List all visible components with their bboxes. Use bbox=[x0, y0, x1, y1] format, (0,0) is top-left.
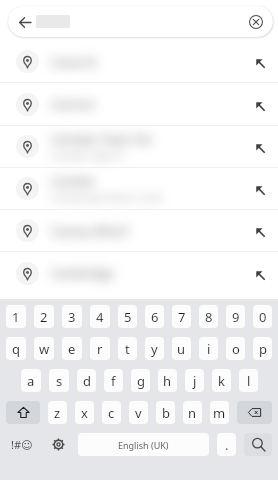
staticText: Cambridge bbox=[51, 265, 114, 281]
button[interactable]: Insert suggestion bbox=[243, 44, 278, 79]
button[interactable]: Cambridge bbox=[0, 252, 278, 294]
button[interactable]: Shift bbox=[6, 401, 40, 424]
staticText: 4 bbox=[96, 308, 104, 326]
button[interactable]: Cannon bbox=[0, 83, 278, 125]
button[interactable]: c bbox=[102, 401, 121, 424]
staticText: 6 bbox=[151, 308, 159, 326]
staticText: g bbox=[137, 372, 145, 390]
staticText: u bbox=[177, 340, 186, 358]
button[interactable]: g bbox=[131, 369, 150, 392]
staticText: Camber bbox=[51, 173, 96, 189]
button[interactable]: t bbox=[118, 337, 137, 360]
button[interactable]: 3 bbox=[62, 305, 82, 328]
button[interactable]: Backspace bbox=[237, 401, 272, 424]
staticText: x bbox=[81, 404, 88, 422]
button[interactable]: p bbox=[253, 337, 272, 360]
staticText: c bbox=[108, 404, 115, 422]
button[interactable]: o bbox=[226, 337, 245, 360]
staticText: . bbox=[225, 436, 229, 454]
button[interactable]: Symbols and emoji bbox=[2, 433, 42, 456]
staticText: Cannon bbox=[51, 96, 95, 112]
button[interactable]: d bbox=[77, 369, 96, 392]
button[interactable]: q bbox=[6, 337, 26, 360]
button[interactable]: Back bbox=[11, 8, 39, 36]
staticText: t bbox=[125, 340, 130, 358]
button[interactable]: Keyboard settings bbox=[42, 433, 74, 456]
button[interactable]: u bbox=[172, 337, 191, 360]
staticText: 9 bbox=[232, 308, 240, 326]
staticText: i bbox=[207, 340, 211, 358]
staticText: 2 bbox=[40, 308, 48, 326]
staticText: h bbox=[163, 372, 172, 390]
button[interactable]: e bbox=[62, 337, 82, 360]
button[interactable]: . bbox=[217, 433, 236, 456]
staticText: r bbox=[97, 340, 103, 358]
staticText: 1 bbox=[12, 308, 20, 326]
button[interactable]: s bbox=[49, 369, 69, 392]
button[interactable]: English (UK) bbox=[78, 433, 209, 456]
button[interactable]: 0 bbox=[253, 305, 272, 328]
staticText: k bbox=[218, 372, 225, 390]
button[interactable]: l bbox=[239, 369, 258, 392]
button[interactable]: i bbox=[199, 337, 218, 360]
button[interactable]: Insert suggestion bbox=[243, 256, 278, 291]
button[interactable]: Canal St bbox=[0, 41, 278, 82]
button[interactable]: Insert suggestion bbox=[243, 171, 278, 206]
button[interactable]: Clear search bbox=[243, 9, 269, 35]
staticText: j bbox=[193, 372, 197, 390]
button[interactable]: Canary Wharf bbox=[0, 210, 278, 251]
button[interactable]: y bbox=[145, 337, 164, 360]
staticText: f bbox=[111, 372, 116, 390]
staticText: o bbox=[232, 340, 240, 358]
staticText: !#☺ bbox=[11, 437, 33, 452]
staticText: a bbox=[27, 372, 35, 390]
staticText: p bbox=[259, 340, 267, 358]
button[interactable]: 2 bbox=[34, 305, 54, 328]
staticText: English (UK) bbox=[118, 439, 169, 451]
button[interactable]: x bbox=[75, 401, 94, 424]
button[interactable]: 7 bbox=[172, 305, 191, 328]
staticText: b bbox=[162, 404, 170, 422]
button[interactable]: b bbox=[156, 401, 175, 424]
staticText: Canal St bbox=[51, 54, 97, 70]
staticText: Camden Town Stn bbox=[51, 131, 153, 147]
staticText: w bbox=[39, 340, 50, 358]
staticText: 8 bbox=[205, 308, 213, 326]
button[interactable]: Insert suggestion bbox=[243, 213, 278, 248]
button[interactable]: 8 bbox=[199, 305, 218, 328]
button[interactable]: k bbox=[212, 369, 231, 392]
staticText: e bbox=[68, 340, 76, 358]
staticText: q bbox=[12, 340, 20, 358]
button[interactable]: 5 bbox=[118, 305, 137, 328]
button[interactable]: a bbox=[21, 369, 41, 392]
staticText: z bbox=[54, 404, 61, 422]
button[interactable]: n bbox=[183, 401, 202, 424]
button[interactable]: w bbox=[34, 337, 54, 360]
button[interactable]: m bbox=[210, 401, 229, 424]
button[interactable]: 6 bbox=[145, 305, 164, 328]
button[interactable]: Camden Town Stn bbox=[0, 126, 278, 167]
button[interactable]: v bbox=[129, 401, 148, 424]
button[interactable]: h bbox=[158, 369, 177, 392]
button[interactable]: Search bbox=[244, 433, 272, 456]
button[interactable]: Insert suggestion bbox=[243, 129, 278, 164]
button[interactable]: 9 bbox=[226, 305, 245, 328]
staticText: d bbox=[83, 372, 91, 390]
staticText: 3 bbox=[68, 308, 76, 326]
button[interactable]: f bbox=[104, 369, 123, 392]
button[interactable]: j bbox=[185, 369, 204, 392]
staticText: 7 bbox=[178, 308, 186, 326]
staticText: m bbox=[213, 404, 226, 422]
button[interactable]: r bbox=[90, 337, 110, 360]
staticText: s bbox=[56, 372, 63, 390]
staticText: 5 bbox=[124, 308, 132, 326]
button[interactable]: z bbox=[48, 401, 67, 424]
button[interactable]: Insert suggestion bbox=[243, 87, 278, 122]
staticText: n bbox=[188, 404, 197, 422]
button[interactable]: 1 bbox=[6, 305, 26, 328]
button[interactable]: 4 bbox=[90, 305, 110, 328]
button[interactable]: Camber bbox=[0, 168, 278, 209]
staticText: v bbox=[135, 404, 142, 422]
